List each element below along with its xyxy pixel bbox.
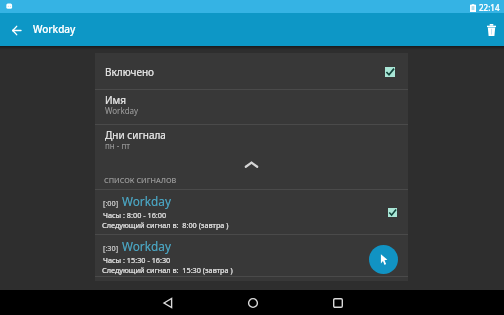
button[interactable]: [:30] <box>95 235 408 276</box>
button[interactable]: Back <box>125 290 210 315</box>
staticText: Следующий сигнал в: 8:00 (завтра ) <box>102 220 229 230</box>
button[interactable]: Add alarm <box>369 245 398 274</box>
staticText: Следующий сигнал в: 15:30 (завтра ) <box>102 265 233 275</box>
staticText: Имя <box>105 93 127 107</box>
staticText: Workday <box>122 193 171 209</box>
staticText: Часы : 8:00 - 16:00 <box>103 210 167 220</box>
staticText: [:30] <box>103 243 119 253</box>
staticText: 22:14 <box>479 2 500 13</box>
staticText: [:00] <box>103 198 119 208</box>
staticText: СПИСОК СИГНАЛОВ <box>104 175 177 185</box>
button[interactable]: Recents <box>295 290 380 315</box>
staticText: пн - пт <box>105 140 131 151</box>
button[interactable]: Back <box>3 17 29 43</box>
button[interactable]: Delete <box>478 17 504 43</box>
button[interactable]: Включено <box>95 53 408 89</box>
button[interactable]: [:00] <box>95 190 408 234</box>
staticText: Workday <box>105 105 139 116</box>
staticText: Дни сигнала <box>105 128 166 142</box>
button[interactable]: Дни сигнала <box>95 125 408 154</box>
button[interactable]: Home <box>210 290 295 315</box>
button[interactable]: Имя <box>95 90 408 124</box>
button[interactable]: Collapse <box>95 154 408 174</box>
staticText: Включено <box>105 65 155 79</box>
staticText: Часы : 15:30 - 16:30 <box>103 255 171 265</box>
staticText: Workday <box>33 22 76 36</box>
staticText: Workday <box>122 238 171 254</box>
